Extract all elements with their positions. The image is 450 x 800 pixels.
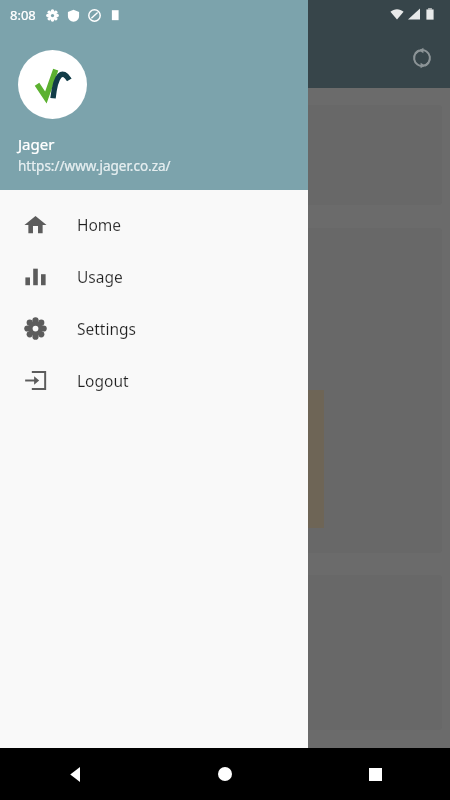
button[interactable]: Usage bbox=[0, 250, 308, 302]
button[interactable]: Recent apps bbox=[300, 748, 450, 800]
button[interactable]: Home bbox=[0, 198, 308, 250]
staticText: Jager bbox=[18, 134, 55, 154]
button[interactable]: Back bbox=[0, 748, 150, 800]
staticText: Settings bbox=[77, 318, 136, 339]
button[interactable]: Settings bbox=[0, 302, 308, 354]
button[interactable]: Account avatar bbox=[18, 50, 87, 119]
button[interactable]: Logout bbox=[0, 354, 308, 406]
staticText: 8:08 bbox=[10, 6, 36, 24]
staticText: Usage bbox=[77, 266, 123, 287]
button[interactable]: Refresh bbox=[404, 40, 440, 76]
button[interactable]: 11:00 bbox=[8, 228, 442, 553]
button[interactable] bbox=[8, 105, 442, 205]
staticText: Logout bbox=[77, 370, 129, 391]
staticText: Home bbox=[77, 214, 122, 235]
button[interactable]: Home bbox=[150, 748, 300, 800]
button[interactable]: 3.34kWh bbox=[8, 575, 442, 730]
staticText: https://www.jager.co.za/ bbox=[18, 157, 171, 175]
